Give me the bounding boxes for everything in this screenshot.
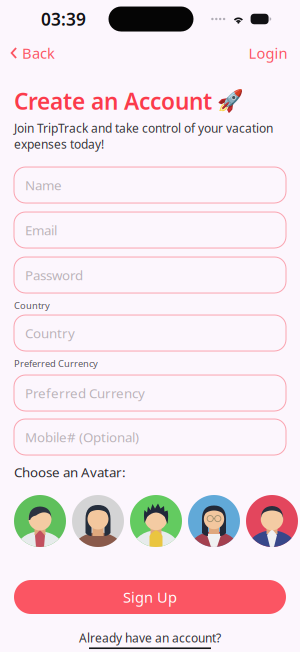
button[interactable]: Avatar 2	[72, 495, 124, 547]
staticText: expenses today!	[14, 136, 104, 152]
staticText: 03:39	[41, 7, 86, 30]
staticText: Name	[25, 176, 62, 194]
staticText: Choose an Avatar:	[14, 463, 126, 481]
button[interactable]: Login	[236, 38, 300, 68]
staticText: Back	[22, 43, 55, 63]
staticText: Country	[14, 299, 50, 312]
button[interactable]: Avatar 4	[188, 495, 240, 547]
button[interactable]: Avatar 1	[14, 495, 66, 547]
button[interactable]: Mobile# (Optional)	[14, 419, 286, 455]
staticText: Mobile# (Optional)	[25, 428, 139, 446]
staticText: Password	[25, 266, 83, 284]
button[interactable]: Preferred Currency	[14, 375, 286, 411]
staticText: Country	[25, 324, 75, 342]
button[interactable]: Password	[14, 257, 286, 293]
staticText: 🚀	[217, 89, 244, 113]
staticText: Sign Up	[123, 587, 177, 607]
staticText: Email	[25, 221, 57, 239]
button[interactable]: Name	[14, 167, 286, 203]
button[interactable]: Avatar 5	[246, 495, 298, 547]
button[interactable]: Country	[14, 315, 286, 351]
staticText: Preferred Currency	[25, 384, 145, 402]
button[interactable]: Back	[0, 38, 65, 68]
staticText: Join TripTrack and take control of your …	[14, 120, 273, 136]
staticText: Already have an account?	[79, 630, 221, 646]
button[interactable]: Email	[14, 212, 286, 248]
button[interactable]: Sign Up	[14, 580, 286, 614]
button[interactable]: Already have an account?	[0, 630, 300, 649]
staticText: Create an Account	[14, 86, 212, 116]
button[interactable]: Avatar 3	[130, 495, 182, 547]
staticText: Preferred Currency	[14, 357, 98, 370]
staticText: Login	[248, 43, 287, 63]
